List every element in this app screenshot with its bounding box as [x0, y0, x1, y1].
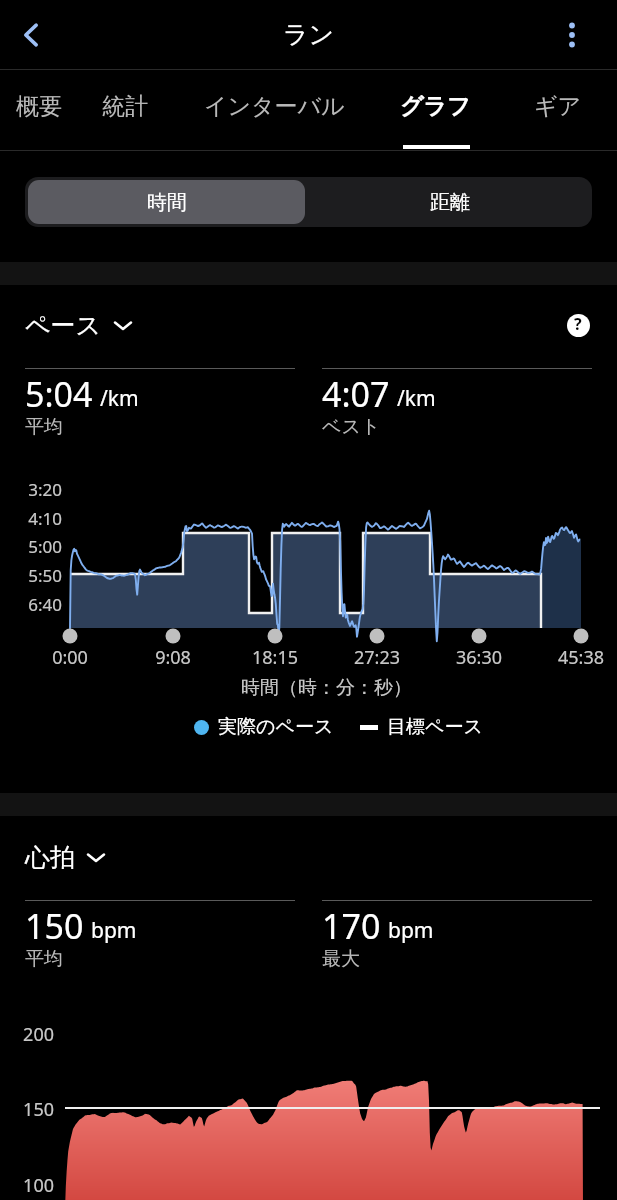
button[interactable]: Back	[8, 12, 54, 58]
staticText: グラフ	[400, 92, 471, 121]
staticText: 27:23	[332, 645, 422, 670]
button[interactable]: インターバル	[200, 71, 348, 151]
staticText: 4:10	[18, 507, 62, 530]
staticText: 5:00	[18, 535, 62, 558]
staticText: ペース	[25, 310, 102, 341]
staticText: 170	[322, 903, 381, 949]
button[interactable]: 距離	[308, 177, 592, 227]
button[interactable]: ペース	[25, 307, 133, 343]
staticText: ベスト	[322, 415, 381, 439]
staticText: 距離	[430, 190, 470, 215]
staticText: 実際のペース	[218, 715, 334, 739]
staticText: 時間（時：分：秒）	[18, 676, 617, 700]
staticText: 18:15	[230, 645, 320, 670]
staticText: 時間	[147, 190, 187, 215]
staticText: ギア	[534, 92, 582, 121]
staticText: 6:40	[18, 593, 62, 616]
staticText: 150	[25, 903, 84, 949]
button[interactable]: 統計	[89, 71, 161, 151]
staticText: 100	[14, 1173, 54, 1198]
staticText: 4:07	[322, 371, 390, 417]
staticText: 150	[14, 1097, 54, 1122]
staticText: 目標ペース	[387, 715, 483, 739]
staticText: 5:50	[18, 564, 62, 587]
staticText: 0:00	[25, 645, 115, 670]
staticText: 5:04	[25, 371, 93, 417]
button[interactable]: Help	[562, 309, 594, 341]
button[interactable]: 概要	[3, 71, 75, 151]
staticText: 200	[14, 1022, 54, 1047]
staticText: 心拍	[25, 842, 75, 873]
staticText: 9:08	[128, 645, 218, 670]
staticText: 平均	[25, 947, 63, 971]
staticText: 平均	[25, 415, 63, 439]
staticText: インターバル	[204, 92, 345, 121]
staticText: 統計	[102, 92, 148, 121]
staticText: 最大	[322, 947, 360, 971]
button[interactable]: 時間	[28, 180, 305, 224]
staticText: 36:30	[434, 645, 524, 670]
button[interactable]: ギア	[522, 71, 594, 151]
staticText: 3:20	[18, 478, 62, 501]
staticText: /km	[397, 384, 436, 413]
button[interactable]: グラフ	[393, 71, 477, 151]
staticText: bpm	[91, 916, 137, 945]
button[interactable]: 心拍	[25, 839, 106, 875]
staticText: /km	[100, 384, 139, 413]
staticText: 概要	[16, 92, 62, 121]
staticText: ラン	[283, 19, 335, 50]
staticText: bpm	[388, 916, 434, 945]
staticText: 45:38	[536, 645, 617, 670]
button[interactable]: More options	[550, 13, 594, 57]
staticText: ?	[574, 313, 582, 335]
